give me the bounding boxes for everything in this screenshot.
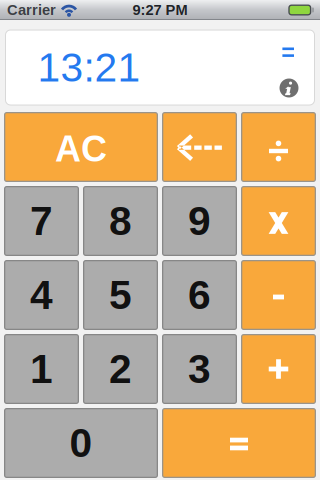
- button[interactable]: Plus: [241, 334, 316, 404]
- button[interactable]: 4: [4, 260, 79, 330]
- staticText: Carrier: [7, 2, 56, 18]
- staticText: 2: [109, 346, 132, 392]
- staticText: AC: [55, 129, 107, 169]
- button[interactable]: 3: [162, 334, 237, 404]
- button[interactable]: Backspace: [162, 112, 237, 182]
- staticText: 7: [30, 198, 53, 244]
- button[interactable]: 2: [83, 334, 158, 404]
- staticText: 1: [30, 346, 53, 392]
- button[interactable]: Minus: [241, 260, 316, 330]
- staticText: 5: [109, 272, 132, 318]
- button[interactable]: 9: [162, 186, 237, 256]
- button[interactable]: Info: [279, 78, 298, 97]
- staticText: 3: [188, 346, 211, 392]
- button[interactable]: 7: [4, 186, 79, 256]
- button[interactable]: Multiply: [241, 186, 316, 256]
- button[interactable]: 6: [162, 260, 237, 330]
- staticText: 8: [109, 198, 132, 244]
- staticText: 0: [69, 420, 92, 466]
- staticText: 9:27 PM: [132, 2, 187, 18]
- staticText: 4: [30, 272, 53, 318]
- button[interactable]: 8: [83, 186, 158, 256]
- staticText: 9: [188, 198, 211, 244]
- button[interactable]: All Clear: [4, 112, 158, 182]
- button[interactable]: 0: [4, 408, 158, 478]
- staticText: 13:21: [37, 45, 140, 90]
- button[interactable]: Divide: [241, 112, 316, 182]
- button[interactable]: 1: [4, 334, 79, 404]
- button[interactable]: 5: [83, 260, 158, 330]
- button[interactable]: Equals: [162, 408, 316, 478]
- staticText: 6: [188, 272, 211, 318]
